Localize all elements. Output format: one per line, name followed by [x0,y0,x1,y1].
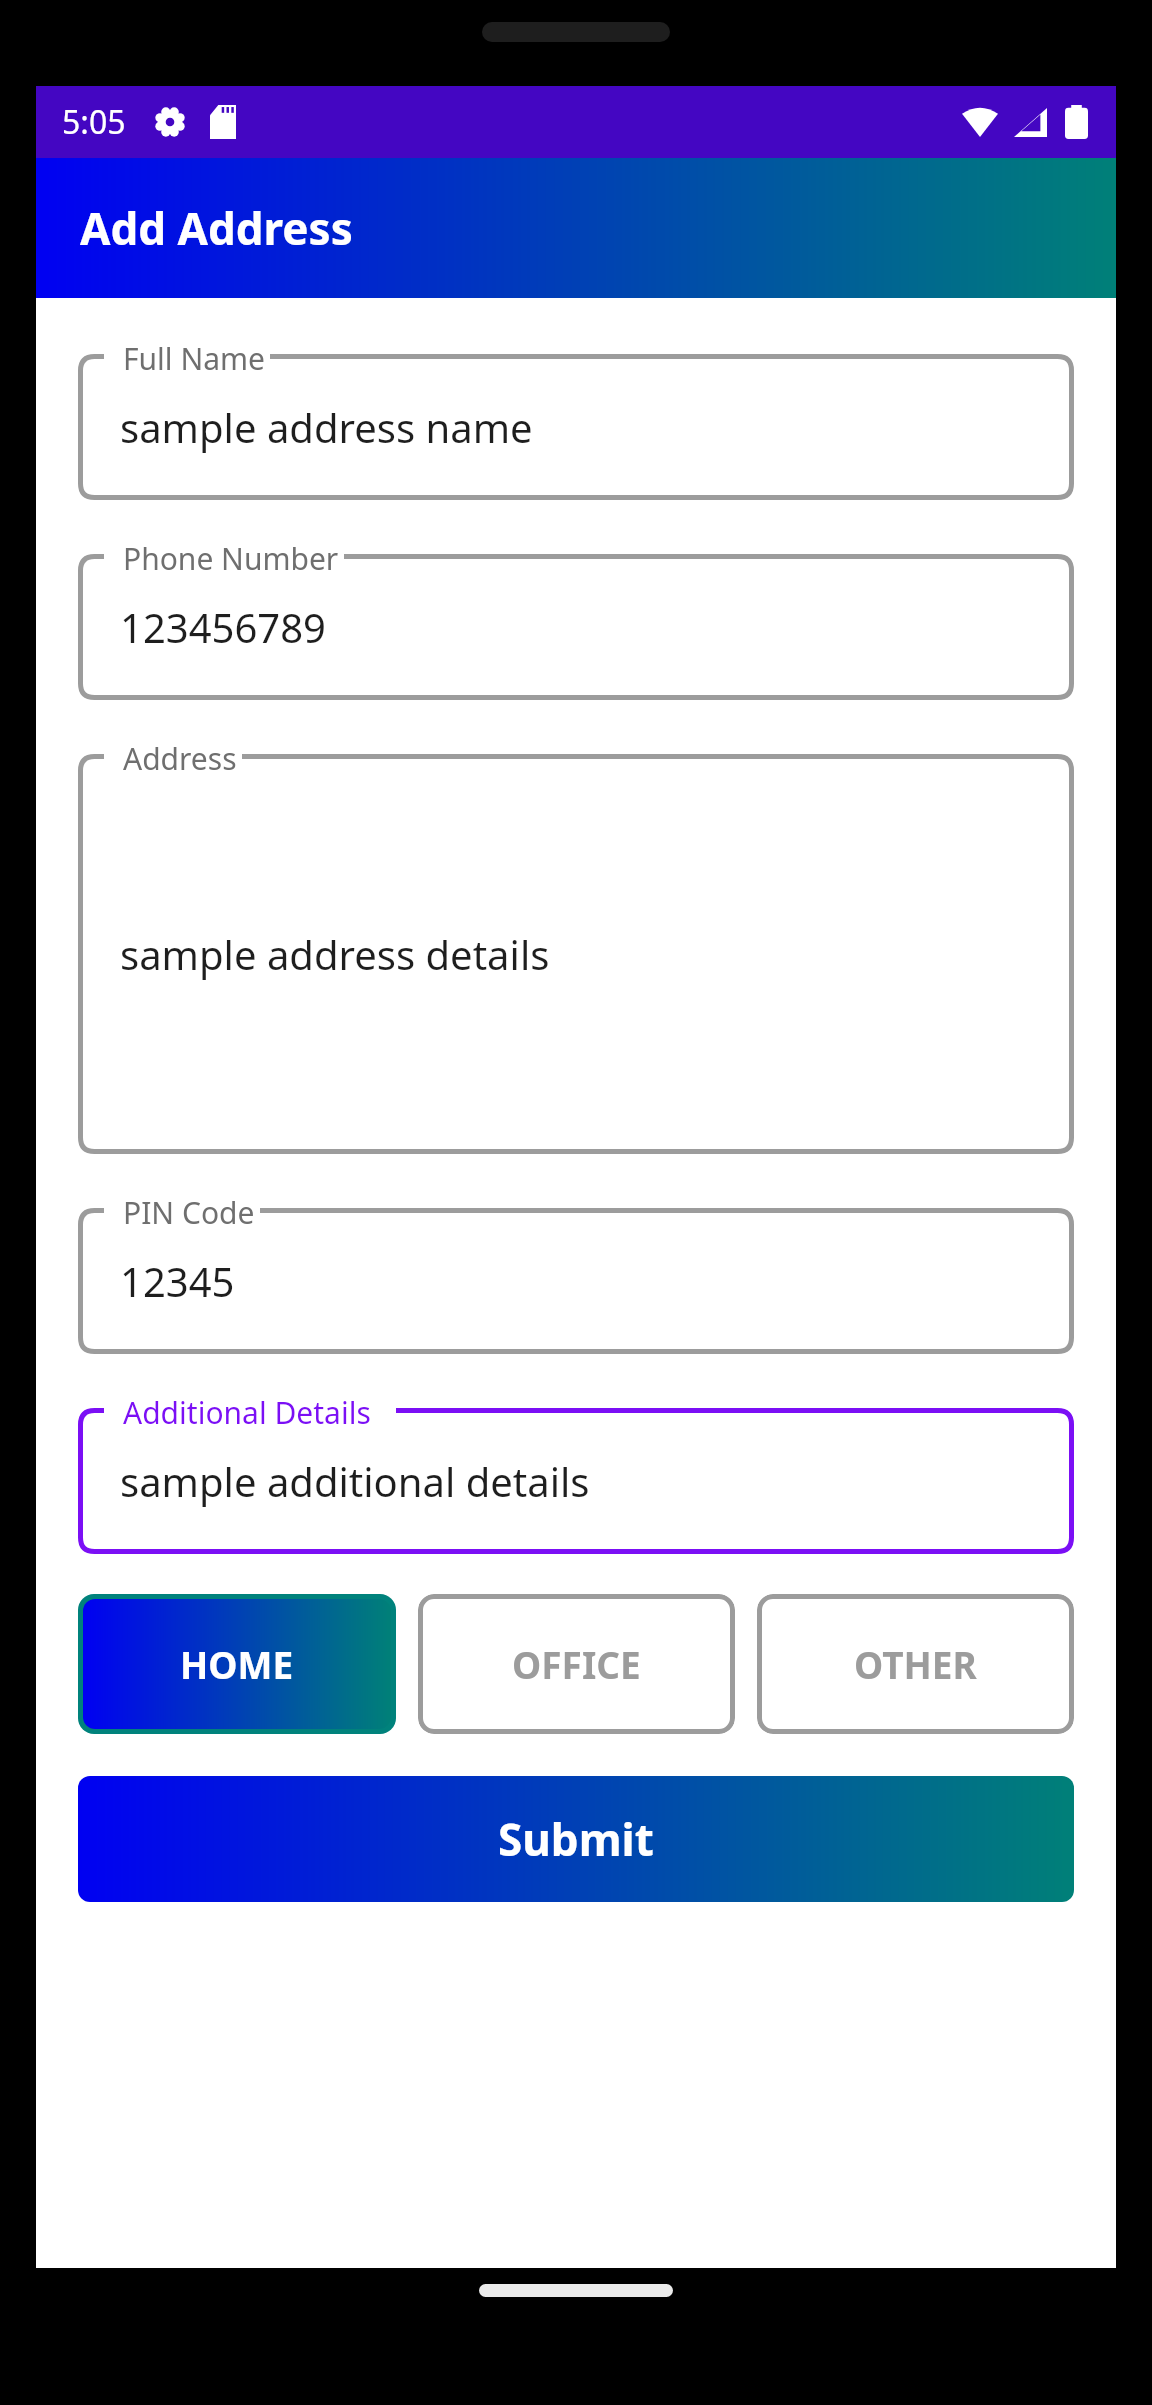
button[interactable]: HOME [83,1599,391,1729]
staticText: HOME [180,1639,294,1689]
staticText: 123456789 [120,600,326,654]
staticText: Phone Number [123,538,339,579]
staticText: 12345 [120,1254,235,1308]
staticText: Full Name [123,338,265,379]
staticText: sample address details [120,927,550,981]
staticText: Add Address [80,198,353,258]
button[interactable]: sample additional details [78,1392,1074,1554]
button[interactable]: 12345 [78,1192,1074,1354]
staticText: OFFICE [512,1639,641,1689]
button[interactable]: OFFICE [418,1594,735,1734]
button[interactable]: sample address name [78,338,1074,500]
staticText: sample address name [120,400,533,454]
staticText: Submit [498,1809,654,1869]
staticText: 5:05 [62,100,126,144]
button[interactable]: Submit [78,1776,1074,1902]
staticText: sample additional details [120,1454,590,1508]
button[interactable]: sample address details [78,738,1074,1154]
staticText: OTHER [854,1639,977,1689]
staticText: Address [123,738,237,779]
staticText: PIN Code [123,1192,255,1233]
button[interactable]: 123456789 [78,538,1074,700]
staticText: Additional Details [123,1392,371,1433]
button[interactable]: OTHER [757,1594,1074,1734]
